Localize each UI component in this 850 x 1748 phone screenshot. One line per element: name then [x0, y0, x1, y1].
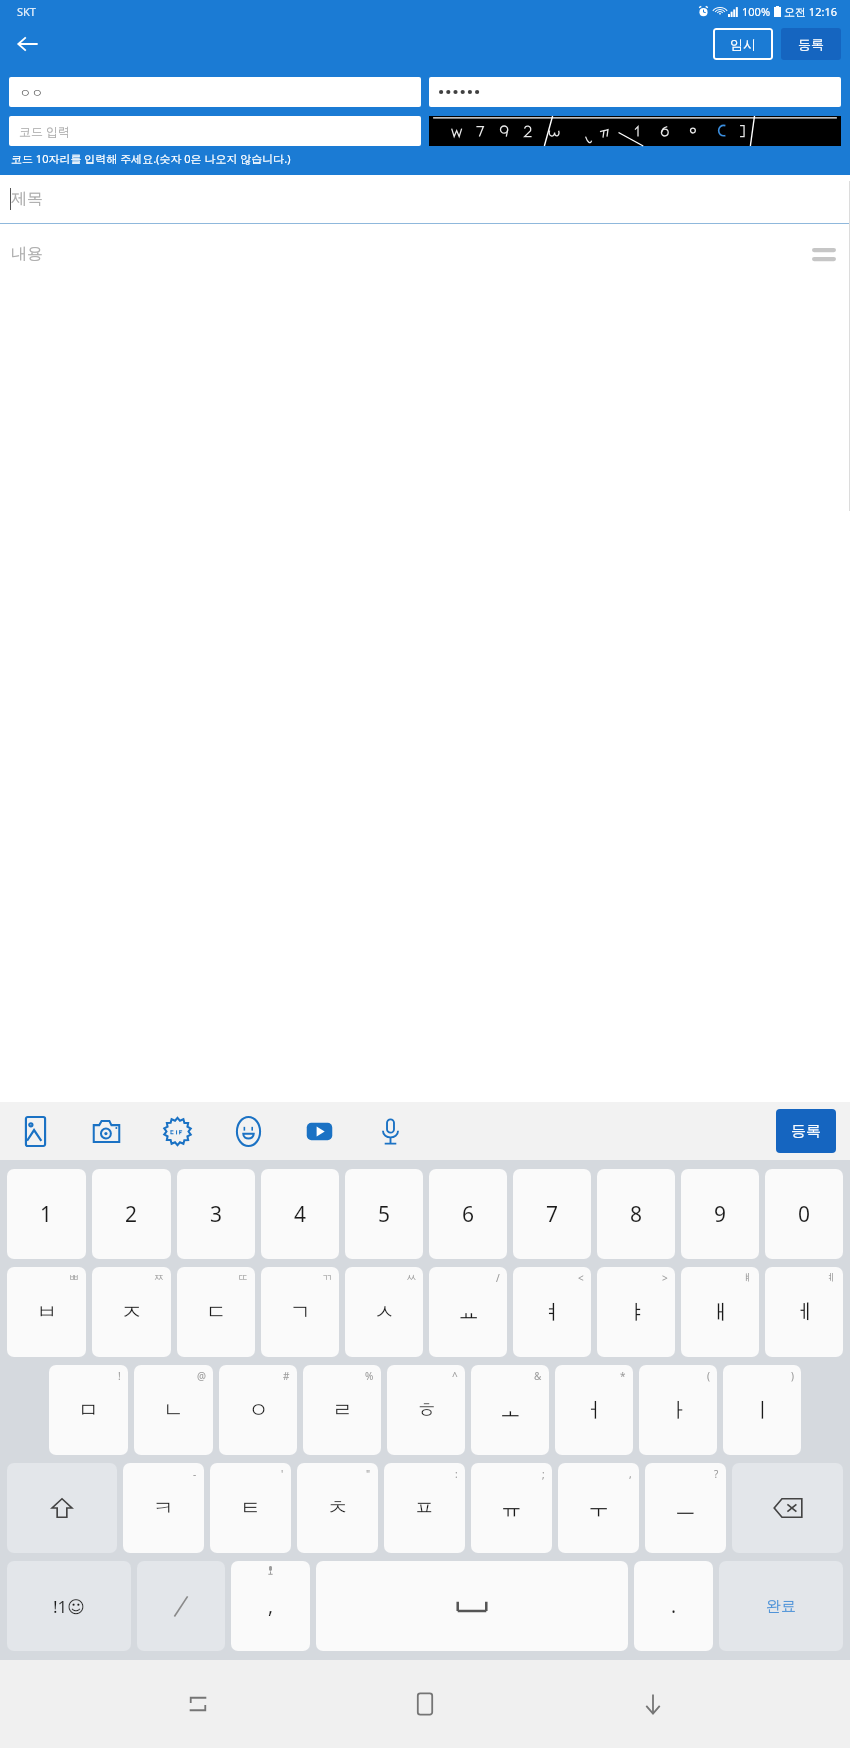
staticText: ㅜ: [588, 1495, 609, 1521]
button[interactable]: ㅏ: [639, 1365, 717, 1455]
button[interactable]: Recents: [168, 1674, 228, 1734]
staticText: 등록: [791, 1122, 821, 1141]
staticText: ': [281, 1467, 284, 1481]
button[interactable]: 내용: [0, 224, 850, 284]
button[interactable]: 등록: [776, 1109, 836, 1153]
staticText: 오전 12:16: [784, 4, 837, 19]
staticText: 100%: [742, 4, 771, 19]
staticText: 6: [462, 1200, 475, 1229]
button[interactable]: 완료: [719, 1561, 843, 1651]
button[interactable]: 임시: [713, 28, 773, 60]
staticText: 내용: [11, 244, 43, 264]
button[interactable]: Add video: [298, 1110, 340, 1152]
staticText: ㄹ: [332, 1397, 353, 1423]
staticText: ㅅ: [374, 1299, 395, 1325]
button[interactable]: Emoticon: [227, 1110, 269, 1152]
staticText: /: [496, 1271, 500, 1285]
button[interactable]: 9: [681, 1169, 759, 1259]
staticText: 제목: [11, 189, 43, 209]
staticText: ㄸ: [238, 1271, 248, 1284]
button[interactable]: [429, 77, 841, 107]
button[interactable]: Backspace: [732, 1463, 843, 1553]
button[interactable]: 3: [177, 1169, 255, 1259]
button[interactable]: ㅎ: [387, 1365, 465, 1455]
button[interactable]: 코드 입력: [9, 116, 421, 146]
button[interactable]: ㅋ: [123, 1463, 204, 1553]
button[interactable]: Camera: [85, 1110, 127, 1152]
button[interactable]: ㅈ: [92, 1267, 171, 1357]
staticText: ㄴ: [163, 1397, 184, 1423]
button[interactable]: Space: [316, 1561, 628, 1651]
button[interactable]: ㅅ: [345, 1267, 423, 1357]
staticText: ㅑ: [626, 1299, 647, 1325]
staticText: ㄷ: [206, 1299, 227, 1325]
button[interactable]: ㄹ: [303, 1365, 381, 1455]
button[interactable]: Home: [395, 1674, 455, 1734]
button[interactable]: 8: [597, 1169, 675, 1259]
button[interactable]: ㄷ: [177, 1267, 255, 1357]
staticText: #: [283, 1369, 290, 1383]
button[interactable]: Hide keyboard: [623, 1674, 683, 1734]
staticText: 완료: [766, 1597, 796, 1616]
button[interactable]: ㅕ: [513, 1267, 591, 1357]
staticText: ,: [268, 1593, 274, 1619]
button[interactable]: Add photo: [14, 1110, 56, 1152]
staticText: -: [193, 1467, 197, 1481]
staticText: 8: [630, 1200, 643, 1229]
button[interactable]: Voice input: [369, 1110, 411, 1152]
button[interactable]: ㅁ: [49, 1365, 128, 1455]
button[interactable]: Add GIF: [156, 1110, 198, 1152]
button[interactable]: ㅠ: [471, 1463, 552, 1553]
staticText: :: [455, 1467, 458, 1481]
button[interactable]: ㄱ: [261, 1267, 339, 1357]
button[interactable]: ㅍ: [384, 1463, 465, 1553]
button[interactable]: ㅡ: [645, 1463, 726, 1553]
staticText: @: [197, 1369, 206, 1383]
button[interactable]: ㅐ: [681, 1267, 759, 1357]
staticText: ㅊ: [327, 1495, 348, 1521]
button[interactable]: 0: [765, 1169, 843, 1259]
button[interactable]: ㅓ: [555, 1365, 633, 1455]
staticText: ㅆ: [406, 1271, 416, 1284]
staticText: !1☺: [53, 1595, 86, 1618]
button[interactable]: Shift: [7, 1463, 117, 1553]
staticText: SKT: [17, 4, 36, 19]
button[interactable]: ㅗ: [471, 1365, 549, 1455]
button[interactable]: 6: [429, 1169, 507, 1259]
button[interactable]: Captcha image: [429, 116, 841, 146]
button[interactable]: ㅜ: [558, 1463, 639, 1553]
button[interactable]: 7: [513, 1169, 591, 1259]
button[interactable]: ㅌ: [210, 1463, 291, 1553]
staticText: ㅣ: [752, 1397, 773, 1423]
button[interactable]: ㅑ: [597, 1267, 675, 1357]
staticText: .: [671, 1593, 677, 1619]
button[interactable]: 등록: [781, 28, 841, 60]
staticText: ㅡ: [675, 1495, 696, 1521]
button[interactable]: ㅂ: [7, 1267, 86, 1357]
staticText: ": [366, 1467, 371, 1481]
button[interactable]: ,: [231, 1561, 310, 1651]
button[interactable]: !1☺: [7, 1561, 131, 1651]
button[interactable]: ㅇㅇ: [9, 77, 421, 107]
staticText: >: [662, 1271, 668, 1285]
button[interactable]: ㅛ: [429, 1267, 507, 1357]
staticText: ㅎ: [416, 1397, 437, 1423]
button[interactable]: Korean English toggle: [137, 1561, 225, 1651]
button[interactable]: Back: [10, 26, 46, 62]
button[interactable]: ㄴ: [134, 1365, 213, 1455]
staticText: ㄱ: [290, 1299, 311, 1325]
button[interactable]: 제목: [0, 175, 850, 223]
button[interactable]: ㅣ: [723, 1365, 801, 1455]
button[interactable]: ㅇ: [219, 1365, 297, 1455]
button[interactable]: 1: [7, 1169, 86, 1259]
staticText: ): [791, 1369, 794, 1383]
button[interactable]: 5: [345, 1169, 423, 1259]
button[interactable]: .: [634, 1561, 713, 1651]
button[interactable]: 4: [261, 1169, 339, 1259]
button[interactable]: 2: [92, 1169, 171, 1259]
button[interactable]: ㅊ: [297, 1463, 378, 1553]
staticText: ㅇㅇ: [19, 85, 43, 100]
staticText: ?: [714, 1467, 719, 1481]
button[interactable]: ㅔ: [765, 1267, 843, 1357]
staticText: 등록: [798, 36, 824, 52]
